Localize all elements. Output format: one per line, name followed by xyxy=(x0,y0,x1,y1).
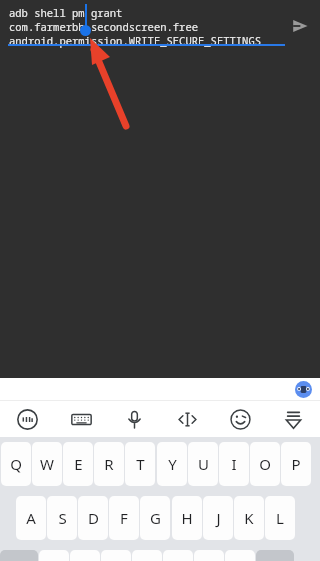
button[interactable]: Voice input xyxy=(108,401,161,437)
button[interactable] xyxy=(101,550,131,561)
button[interactable]: S xyxy=(47,496,77,540)
button[interactable]: G xyxy=(140,496,170,540)
staticText: adb shell pm grant xyxy=(9,6,123,20)
staticText: G xyxy=(150,508,161,528)
button[interactable]: L xyxy=(265,496,295,540)
button[interactable]: K xyxy=(234,496,264,540)
button[interactable]: More options xyxy=(267,401,320,437)
staticText: android.permission.WRITE_SECURE_SETTINGS xyxy=(9,34,261,48)
button[interactable] xyxy=(132,550,162,561)
button[interactable]: R xyxy=(94,442,124,486)
button[interactable] xyxy=(39,550,69,561)
button[interactable] xyxy=(163,550,193,561)
staticText: D xyxy=(88,508,99,528)
button[interactable]: Q xyxy=(1,442,31,486)
staticText: W xyxy=(40,454,54,474)
button[interactable]: F xyxy=(109,496,139,540)
button[interactable]: Input method xyxy=(0,401,54,437)
staticText: L xyxy=(276,508,284,528)
staticText: F xyxy=(120,508,128,528)
button[interactable]: Keyboard settings xyxy=(54,401,108,437)
button[interactable]: Backspace xyxy=(256,550,294,561)
staticText: S xyxy=(58,508,67,528)
button[interactable]: Text editing xyxy=(161,401,214,437)
staticText: R xyxy=(104,454,114,474)
button[interactable]: W xyxy=(32,442,62,486)
button[interactable] xyxy=(70,550,100,561)
staticText: J xyxy=(216,508,221,528)
staticText: Q xyxy=(10,454,22,474)
button[interactable]: T xyxy=(125,442,155,486)
staticText: H xyxy=(181,508,193,528)
button[interactable]: P xyxy=(281,442,311,486)
staticText: A xyxy=(26,508,36,528)
staticText: P xyxy=(291,454,301,474)
button[interactable] xyxy=(225,550,255,561)
staticText: T xyxy=(136,454,145,474)
button[interactable]: Avatar sticker xyxy=(295,381,312,398)
staticText: O xyxy=(259,454,271,474)
staticText: I xyxy=(231,454,237,474)
staticText: Y xyxy=(168,454,177,474)
staticText: K xyxy=(244,508,254,528)
button[interactable]: A xyxy=(16,496,46,540)
button[interactable]: E xyxy=(63,442,93,486)
button[interactable] xyxy=(194,550,224,561)
button[interactable]: Y xyxy=(157,442,187,486)
button[interactable]: Emoji xyxy=(214,401,267,437)
staticText: com.farmerbb.secondscreen.free xyxy=(9,20,198,34)
button[interactable]: O xyxy=(250,442,280,486)
button[interactable]: H xyxy=(172,496,202,540)
button[interactable]: I xyxy=(219,442,249,486)
button[interactable]: Send xyxy=(288,14,312,38)
button[interactable]: Shift xyxy=(0,550,38,561)
button[interactable]: U xyxy=(188,442,218,486)
staticText: U xyxy=(198,454,209,474)
button[interactable]: D xyxy=(78,496,108,540)
button[interactable]: J xyxy=(203,496,233,540)
staticText: E xyxy=(74,454,83,474)
